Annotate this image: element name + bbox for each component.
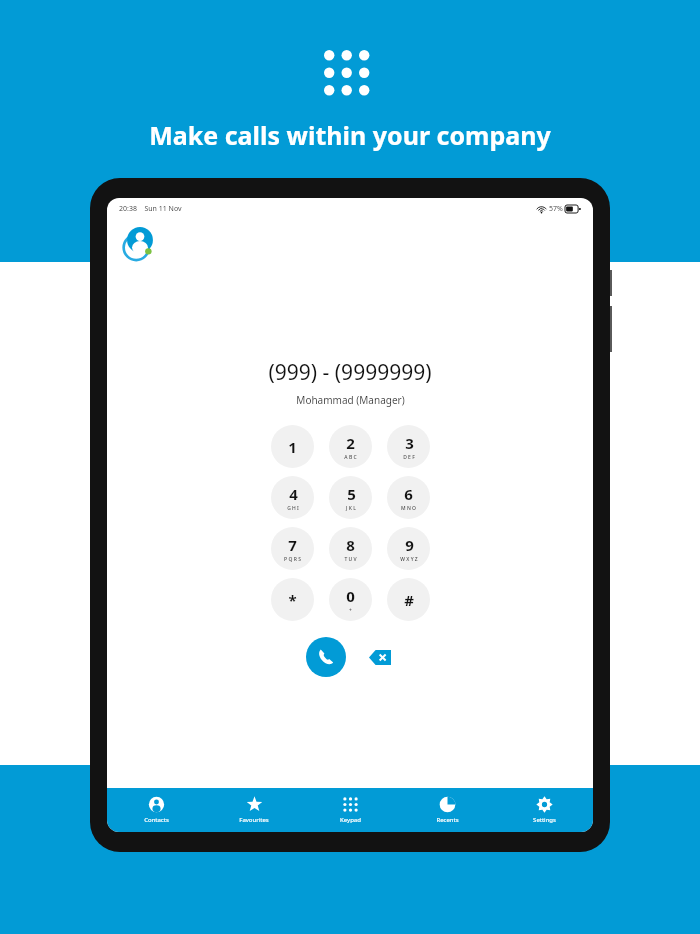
button[interactable]: Keypad (302, 788, 399, 832)
button[interactable]: Recents (399, 788, 496, 832)
staticText: 7 (288, 535, 297, 555)
button[interactable]: 4 (271, 476, 314, 519)
button[interactable]: 3 (387, 425, 430, 468)
staticText: Mohammad (Manager) (296, 393, 405, 407)
staticText: 20:38 (119, 204, 137, 214)
staticText: 3 (405, 433, 414, 453)
staticText: T U V (344, 556, 357, 563)
staticText: 2 (346, 433, 355, 453)
staticText: 5 (347, 484, 356, 504)
staticText: + (349, 607, 352, 614)
staticText: * (288, 590, 297, 610)
button[interactable]: 0 (329, 578, 372, 621)
staticText: Recents (436, 816, 459, 824)
staticText: Keypad (340, 816, 361, 824)
staticText: P Q R S (284, 556, 301, 563)
staticText: G H I (287, 505, 299, 512)
button[interactable]: Call (306, 637, 346, 677)
staticText: 1 (288, 437, 297, 457)
staticText: Settings (533, 816, 556, 824)
staticText: Favourites (239, 816, 269, 824)
button[interactable]: 1 (271, 425, 314, 468)
staticText: 8 (346, 535, 355, 555)
button[interactable]: 8 (329, 527, 372, 570)
staticText: Contacts (144, 816, 169, 824)
button[interactable]: # (387, 578, 430, 621)
staticText: J K L (346, 505, 356, 512)
button[interactable]: Favourites (205, 788, 302, 832)
button[interactable]: Contacts (107, 788, 205, 832)
staticText: 4 (289, 484, 298, 504)
staticText: A B C (344, 454, 357, 461)
staticText: Make calls within your company (149, 118, 551, 152)
staticText: 0 (346, 586, 355, 606)
button[interactable]: Settings (496, 788, 593, 832)
button[interactable]: 9 (387, 527, 430, 570)
staticText: W X Y Z (400, 556, 418, 563)
staticText: # (404, 590, 414, 610)
staticText: D E F (403, 454, 415, 461)
button[interactable]: Backspace (365, 642, 395, 672)
button[interactable]: 5 (329, 476, 372, 519)
staticText: 9 (405, 535, 414, 555)
button[interactable]: 2 (329, 425, 372, 468)
staticText: 6 (404, 484, 413, 504)
button[interactable]: 6 (387, 476, 430, 519)
staticText: Sun 11 Nov (144, 204, 182, 214)
button[interactable]: 7 (271, 527, 314, 570)
staticText: (999) - (9999999) (268, 358, 432, 387)
staticText: 57% (549, 204, 563, 214)
staticText: M N O (401, 505, 416, 512)
button[interactable]: * (271, 578, 314, 621)
